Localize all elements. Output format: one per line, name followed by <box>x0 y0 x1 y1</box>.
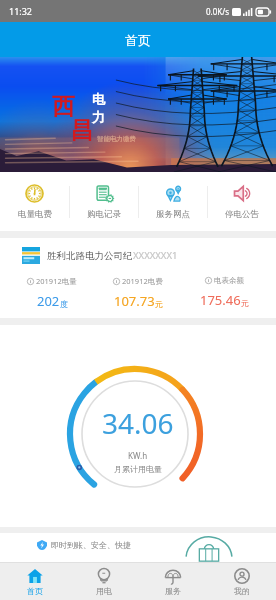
button[interactable]: 胜利北路电力公司纪 <box>0 238 276 318</box>
staticText: 停电公告 <box>225 209 259 220</box>
staticText: 首页 <box>27 586 43 596</box>
staticText: 电表余额 <box>214 276 244 285</box>
staticText: 201912电量 <box>36 276 77 286</box>
staticText: 胜利北路电力公司纪 <box>47 250 133 262</box>
button[interactable]: 用电 <box>69 563 138 600</box>
staticText: XXXXXXX1 <box>133 249 178 262</box>
staticText: 智能电力缴费 <box>97 135 136 143</box>
staticText: 175.46 <box>200 291 241 309</box>
staticText: 首页 <box>125 32 151 48</box>
staticText: 34.06 <box>102 404 174 442</box>
staticText: 元 <box>241 298 249 308</box>
button[interactable]: 首页 <box>0 563 69 600</box>
button[interactable]: 我的 <box>207 563 276 600</box>
button[interactable]: 服务 <box>138 563 207 600</box>
button[interactable]: 服务网点 <box>139 172 207 231</box>
staticText: 11:32 <box>9 5 33 17</box>
staticText: 服务 <box>165 586 181 596</box>
staticText: 即时到账、安全、快捷 <box>51 540 131 550</box>
staticText: 度 <box>60 299 68 309</box>
staticText: 昌 <box>70 116 93 145</box>
staticText: 202 <box>37 292 60 310</box>
staticText: 用电 <box>96 586 112 596</box>
staticText: 0.0K/s <box>206 6 230 17</box>
staticText: 月累计用电量 <box>114 464 162 474</box>
staticText: KW.h <box>128 450 148 461</box>
staticText: 西 <box>52 92 75 121</box>
staticText: 107.73 <box>114 292 155 310</box>
staticText: 电量电费 <box>18 209 52 220</box>
staticText: 购电记录 <box>87 209 121 220</box>
button[interactable]: 电量电费 <box>0 172 69 231</box>
button[interactable]: 购电记录 <box>70 172 138 231</box>
staticText: 201912电费 <box>122 276 163 286</box>
staticText: 服务网点 <box>156 209 190 220</box>
staticText: 我的 <box>234 586 250 596</box>
staticText: 电 <box>92 91 105 107</box>
staticText: 力 <box>92 109 105 125</box>
staticText: 元 <box>155 299 163 309</box>
button[interactable]: 停电公告 <box>208 172 276 231</box>
